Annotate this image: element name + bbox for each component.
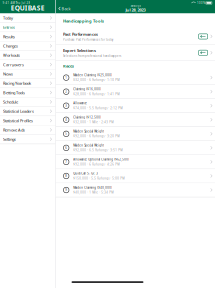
button[interactable]: Schedule bbox=[0, 97, 55, 107]
staticText: 9:41 AM Thu Jul 28 bbox=[2, 1, 30, 5]
staticText: $92,000 · 6.5 Furlongs · 3:51 PM bbox=[73, 148, 122, 152]
staticText: Schedule bbox=[3, 99, 18, 105]
staticText: 9 bbox=[65, 188, 67, 192]
staticText: 2 bbox=[65, 90, 67, 93]
button[interactable]: Settings bbox=[0, 135, 55, 144]
staticText: Betting Tools bbox=[3, 90, 25, 95]
button[interactable]: 8 bbox=[56, 169, 215, 183]
staticText: Claiming ($16,000) bbox=[73, 87, 101, 91]
staticText: Past Performances bbox=[63, 31, 98, 37]
staticText: 100% bbox=[197, 1, 205, 5]
button[interactable]: 5 bbox=[56, 127, 215, 141]
staticText: $32,000 · 6 Furlongs · 1:10 PM bbox=[73, 78, 119, 82]
staticText: Quick Call S - Gr. 3 bbox=[73, 172, 98, 175]
button[interactable]: Betting Tools bbox=[0, 88, 55, 97]
staticText: Maiden Special Weight bbox=[73, 130, 104, 133]
button[interactable]: News bbox=[0, 69, 55, 79]
staticText: Saratoga bbox=[130, 4, 140, 7]
button[interactable]: Statistical Profiles bbox=[0, 116, 55, 125]
button[interactable]: 6 bbox=[56, 141, 215, 155]
staticText: Statistical Profiles bbox=[3, 118, 33, 123]
button[interactable]: 4 bbox=[56, 113, 215, 127]
button[interactable]: Remove Ads bbox=[0, 125, 55, 135]
button[interactable]: Past Performances bbox=[56, 28, 215, 45]
staticText: 5 bbox=[65, 132, 67, 136]
staticText: Entries bbox=[3, 25, 15, 30]
staticText: $32,000 · 1 Mile · 2:43 PM bbox=[73, 120, 113, 124]
staticText: Jul 28, 2023 bbox=[125, 7, 145, 13]
staticText: Maiden Claiming ($25,000) bbox=[73, 73, 112, 77]
staticText: Races bbox=[63, 63, 74, 69]
staticText: Maiden Claiming ($40,000) bbox=[73, 186, 112, 189]
button[interactable]: Entries bbox=[0, 23, 55, 32]
staticText: 1 bbox=[65, 76, 67, 79]
staticText: Handicapping Tools bbox=[63, 18, 104, 24]
button[interactable]: Back bbox=[56, 5, 70, 12]
staticText: $40,000 · 1 Mile · 5:34 PM bbox=[73, 191, 113, 194]
staticText: 3 bbox=[65, 104, 67, 107]
staticText: 7 bbox=[65, 160, 67, 164]
staticText: Racing Yearbook bbox=[3, 81, 31, 86]
button[interactable]: Workouts bbox=[0, 51, 55, 60]
staticText: Settings bbox=[3, 137, 16, 142]
button[interactable]: Racing Yearbook bbox=[0, 79, 55, 88]
staticText: Allowance Optional Claiming ($62,500) bbox=[73, 158, 129, 161]
staticText: $92,000 · 6 Furlongs · 4:26 PM bbox=[73, 163, 119, 166]
staticText: 6 bbox=[65, 146, 67, 150]
button[interactable]: 3 bbox=[56, 99, 215, 113]
staticText: Workouts bbox=[3, 53, 20, 58]
button[interactable]: 1 bbox=[56, 71, 215, 85]
staticText: 8 bbox=[65, 174, 67, 178]
staticText: Remove Ads bbox=[3, 127, 25, 133]
staticText: Today bbox=[3, 15, 13, 21]
staticText: $92,000 · 6 Furlongs · 3:20 PM bbox=[73, 134, 119, 138]
staticText: $28,000 · 6 Furlongs · 1:41 PM bbox=[73, 92, 119, 96]
button[interactable]: Changes bbox=[0, 41, 55, 51]
button[interactable]: 9 bbox=[56, 183, 215, 197]
staticText: News bbox=[3, 71, 13, 77]
button[interactable]: Results bbox=[0, 32, 55, 41]
staticText: $74,000 · 5.5 Furlongs · 2:12 PM bbox=[73, 106, 122, 110]
staticText: EQUIBASE bbox=[11, 3, 45, 12]
staticText: Back bbox=[61, 6, 70, 11]
staticText: $150,000 · 5.5 Furlongs · 5:00 PM bbox=[73, 177, 124, 180]
button[interactable]: Carryovers bbox=[0, 60, 55, 69]
staticText: Statistical Leaders bbox=[3, 109, 34, 114]
button[interactable]: 2 bbox=[56, 85, 215, 99]
button[interactable]: 7 bbox=[56, 155, 215, 169]
staticText: Carryovers bbox=[3, 62, 24, 67]
button[interactable]: Today bbox=[0, 13, 55, 23]
staticText: 4 bbox=[65, 118, 67, 121]
staticText: Expert Selections bbox=[63, 48, 96, 53]
staticText: Results bbox=[3, 34, 15, 39]
staticText: Purchase Past Performances for today bbox=[63, 38, 113, 41]
staticText: Allowance bbox=[73, 101, 87, 105]
staticText: Claiming ($12,500) bbox=[73, 116, 101, 119]
button[interactable]: Statistical Leaders bbox=[0, 107, 55, 116]
button[interactable]: Expert Selections bbox=[56, 45, 215, 61]
staticText: Changes bbox=[3, 43, 18, 49]
staticText: Maiden Special Weight bbox=[73, 144, 104, 147]
staticText: Selections from professional handicapper… bbox=[63, 54, 121, 58]
